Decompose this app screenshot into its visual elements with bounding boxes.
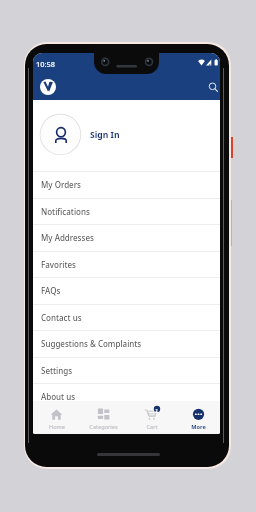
button[interactable]: My Addresses: [33, 224, 220, 251]
staticText: Favorites: [41, 259, 76, 270]
staticText: My Addresses: [41, 232, 94, 243]
staticText: Suggestions & Complaints: [41, 338, 142, 349]
staticText: More: [191, 423, 206, 431]
staticText: Sign In: [90, 129, 120, 141]
button[interactable]: Search: [205, 79, 220, 95]
button[interactable]: Notifications: [33, 198, 220, 225]
button[interactable]: Contact us: [33, 304, 220, 331]
button[interactable]: Home: [33, 401, 80, 434]
staticText: 10:58: [36, 59, 55, 69]
staticText: Contact us: [41, 312, 82, 323]
button[interactable]: More: [175, 401, 220, 434]
button[interactable]: My Orders: [33, 171, 220, 198]
button[interactable]: FAQs: [33, 277, 220, 304]
staticText: Categories: [89, 423, 118, 431]
button[interactable]: Categories: [80, 401, 127, 434]
button[interactable]: Sign In: [33, 100, 220, 171]
button[interactable]: Suggestions & Complaints: [33, 330, 220, 357]
staticText: My Orders: [41, 179, 81, 190]
staticText: Home: [49, 423, 65, 431]
staticText: Settings: [41, 365, 73, 376]
staticText: 2: [155, 408, 158, 413]
staticText: About us: [41, 391, 76, 402]
staticText: Notifications: [41, 206, 90, 217]
staticText: FAQs: [41, 285, 61, 296]
button[interactable]: Settings: [33, 357, 220, 384]
button[interactable]: About us: [33, 383, 220, 410]
button[interactable]: Favorites: [33, 251, 220, 278]
staticText: Cart: [146, 423, 158, 431]
button[interactable]: Logo: [40, 79, 56, 95]
button[interactable]: 2: [128, 401, 175, 434]
